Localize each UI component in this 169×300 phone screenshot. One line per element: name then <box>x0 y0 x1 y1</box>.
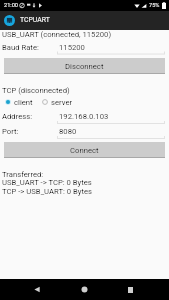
staticText: Disconnect <box>65 62 104 71</box>
staticText: Port: <box>2 127 19 136</box>
button[interactable]: Recent apps <box>120 279 141 300</box>
staticText: 21:00 <box>4 2 18 9</box>
staticText: USB_UART -> TCP: 0 Bytes <box>2 178 92 187</box>
staticText: TCPUART <box>20 16 50 24</box>
staticText: TCP -> USB_UART: 0 Bytes <box>2 187 93 196</box>
staticText: Transferred: <box>2 170 44 179</box>
staticText: Connect <box>70 146 99 155</box>
button[interactable]: Disconnect <box>4 58 165 74</box>
button[interactable]: Connect <box>4 142 165 158</box>
staticText: 8080 <box>59 127 77 136</box>
button[interactable]: Home <box>74 279 95 300</box>
staticText: 115200 <box>59 43 85 52</box>
staticText: 75% <box>149 2 160 9</box>
staticText: client <box>14 98 33 107</box>
staticText: USB_UART (connected, 115200) <box>2 30 112 39</box>
staticText: TCP (disconnected) <box>2 86 70 95</box>
staticText: Address: <box>2 112 33 121</box>
button[interactable]: server <box>40 97 73 107</box>
button[interactable]: Back <box>26 279 47 300</box>
staticText: server <box>51 98 73 107</box>
staticText: Baud Rate: <box>2 43 39 52</box>
staticText: 192.168.0.103 <box>59 112 109 121</box>
button[interactable]: client <box>3 97 33 107</box>
